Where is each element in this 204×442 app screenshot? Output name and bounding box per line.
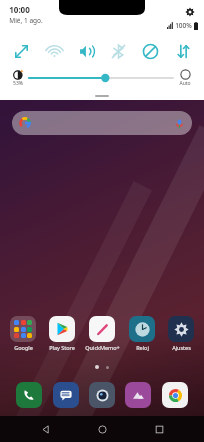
button[interactable]: Camera bbox=[89, 382, 115, 408]
button[interactable]: Google bbox=[4, 316, 42, 351]
button[interactable]: Chrome bbox=[162, 382, 188, 408]
button[interactable]: Screen capture bbox=[6, 36, 36, 66]
staticText: Reloj bbox=[136, 344, 149, 351]
button[interactable]: Ajustes bbox=[162, 316, 200, 351]
staticText: Mié, 1 ago. bbox=[9, 16, 43, 25]
button[interactable]: Play Store bbox=[43, 316, 81, 351]
other: Voice search bbox=[174, 118, 185, 129]
button[interactable]: Voice search bbox=[12, 111, 192, 135]
button[interactable]: Brightness bbox=[7, 69, 29, 87]
staticText: Google bbox=[14, 344, 33, 351]
staticText: 10:00 bbox=[9, 4, 30, 15]
staticText: QuickMemo+ bbox=[85, 344, 120, 351]
button[interactable]: Settings bbox=[183, 5, 197, 19]
staticText: 53% bbox=[13, 80, 23, 87]
button[interactable]: Auto brightness bbox=[173, 69, 197, 87]
button[interactable]: Wi-Fi bbox=[39, 36, 69, 66]
staticText: Play Store bbox=[49, 344, 75, 351]
button[interactable]: Gallery bbox=[125, 382, 151, 408]
staticText: 100% bbox=[175, 21, 192, 30]
button[interactable]: Back bbox=[33, 417, 57, 441]
button[interactable]: Sound bbox=[71, 36, 101, 66]
button[interactable]: Messages bbox=[53, 382, 79, 408]
staticText: Auto bbox=[179, 80, 191, 87]
button[interactable]: Reloj bbox=[123, 316, 161, 351]
button[interactable]: Collapse panel bbox=[95, 95, 109, 97]
button[interactable]: Recents bbox=[147, 417, 171, 441]
button[interactable]: QuickMemo+ bbox=[83, 316, 121, 351]
button[interactable]: Brightness slider bbox=[29, 70, 173, 86]
button[interactable]: Do not disturb bbox=[135, 36, 165, 66]
staticText: Ajustes bbox=[172, 344, 191, 351]
button[interactable]: Mobile data bbox=[168, 36, 198, 66]
button[interactable]: Home bbox=[90, 417, 114, 441]
button[interactable]: Phone bbox=[16, 382, 42, 408]
button[interactable]: Bluetooth bbox=[103, 36, 133, 66]
